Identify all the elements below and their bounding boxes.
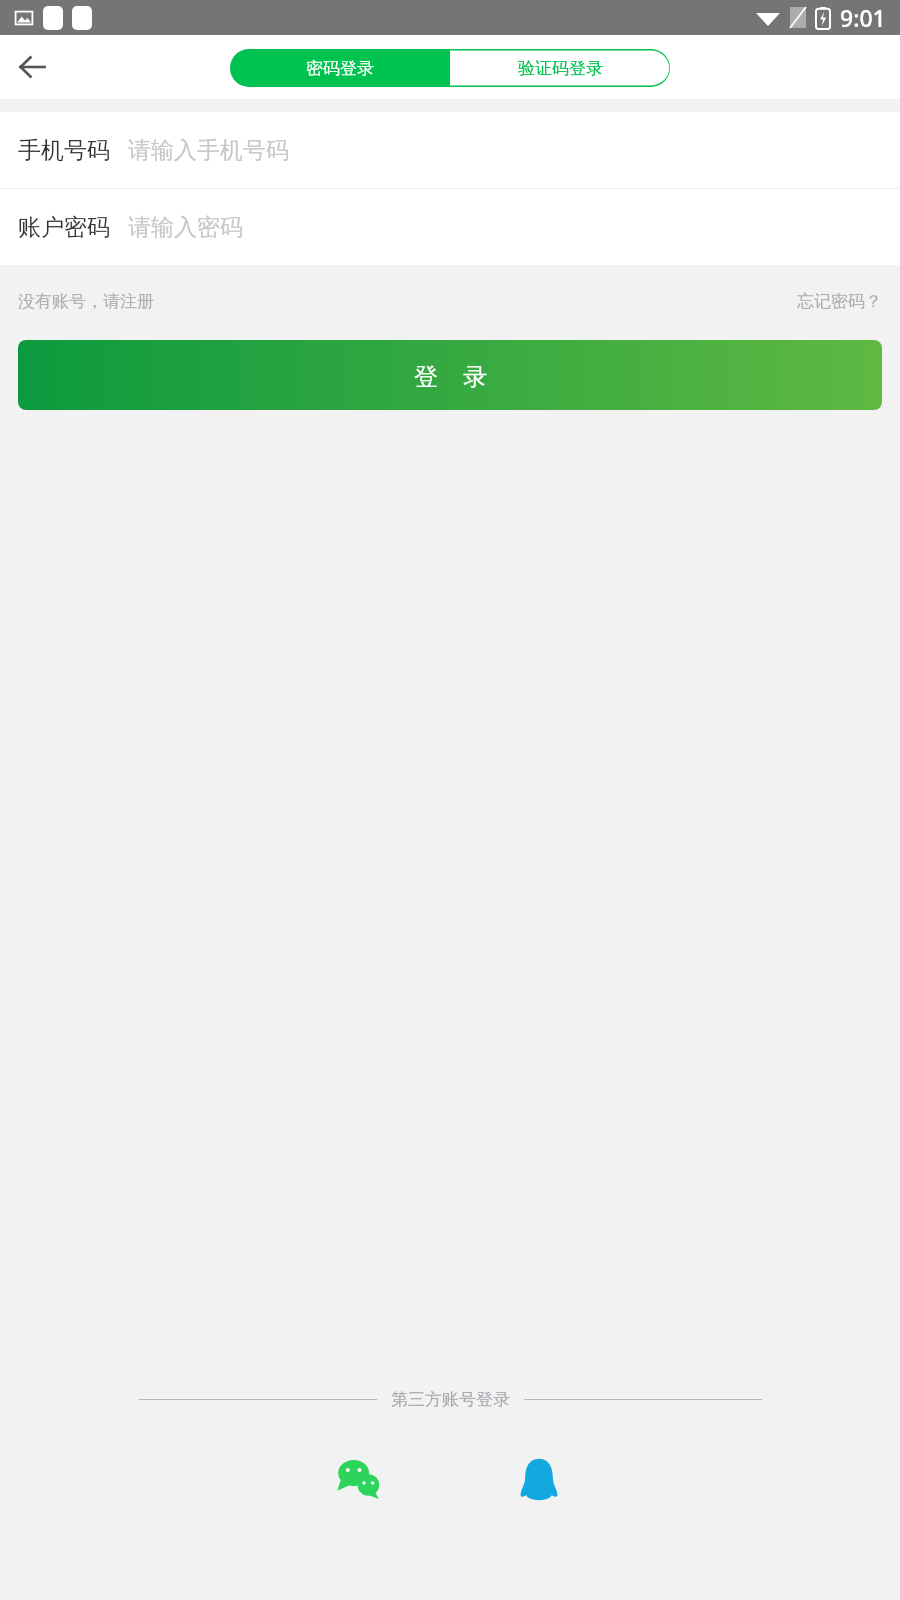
button[interactable]: 验证码登录 xyxy=(450,49,670,87)
staticText: 忘记密码？ xyxy=(797,291,882,312)
staticText: 手机号码 xyxy=(18,136,110,165)
staticText: 没有账号，请注册 xyxy=(18,291,154,312)
staticText: 登 录 xyxy=(414,359,487,392)
button[interactable]: WeChat login xyxy=(330,1448,392,1510)
button[interactable]: 没有账号，请注册 xyxy=(18,285,154,318)
button[interactable]: QQ login xyxy=(508,1448,570,1510)
staticText: 请输入手机号码 xyxy=(128,136,289,165)
staticText: 账户密码 xyxy=(18,213,110,242)
button[interactable]: 手机号码 xyxy=(0,112,900,188)
staticText: 密码登录 xyxy=(306,58,374,79)
staticText: 验证码登录 xyxy=(518,58,603,79)
staticText: 请输入密码 xyxy=(128,213,243,242)
staticText: 9:01 xyxy=(840,2,886,33)
button[interactable]: Back xyxy=(8,43,56,91)
button[interactable]: 密码登录 xyxy=(230,49,450,87)
button[interactable]: 忘记密码？ xyxy=(797,285,882,318)
staticText: 第三方账号登录 xyxy=(391,1389,510,1410)
button[interactable]: 登 录 xyxy=(18,340,882,410)
button[interactable]: 账户密码 xyxy=(0,189,900,265)
